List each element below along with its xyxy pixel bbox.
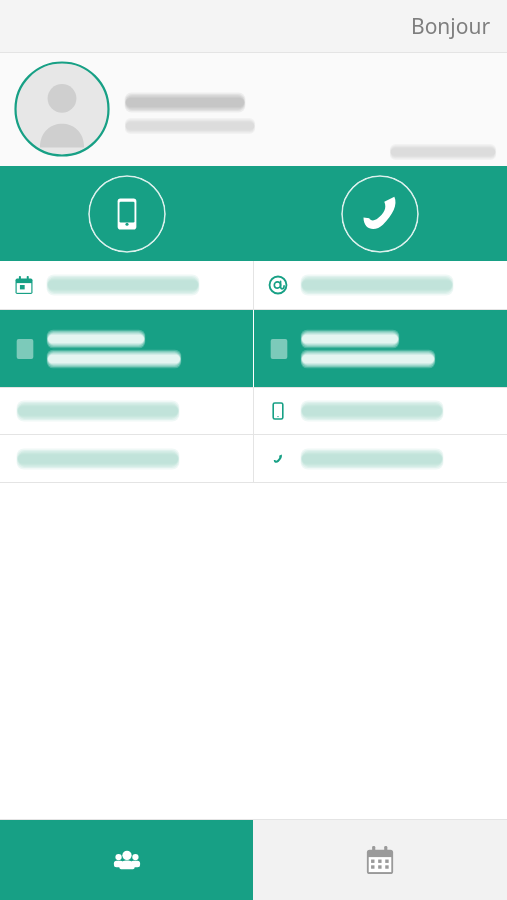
button[interactable]: Mobile bbox=[88, 175, 166, 253]
button[interactable]: Company bbox=[0, 310, 253, 387]
button[interactable] bbox=[0, 53, 507, 166]
button[interactable]: Mobile number bbox=[254, 388, 507, 434]
button[interactable]: Email address 2 bbox=[0, 435, 253, 482]
button[interactable]: Email address bbox=[0, 388, 253, 434]
button[interactable]: Contacts bbox=[0, 820, 253, 900]
button[interactable]: Email bbox=[254, 261, 507, 309]
staticText: Bonjour bbox=[411, 12, 491, 41]
button[interactable]: Phone number bbox=[254, 435, 507, 482]
button[interactable]: Date bbox=[0, 261, 253, 309]
button[interactable]: Call bbox=[341, 175, 419, 253]
button[interactable]: Calendar bbox=[253, 820, 507, 900]
button[interactable]: Company 2 bbox=[254, 310, 507, 387]
